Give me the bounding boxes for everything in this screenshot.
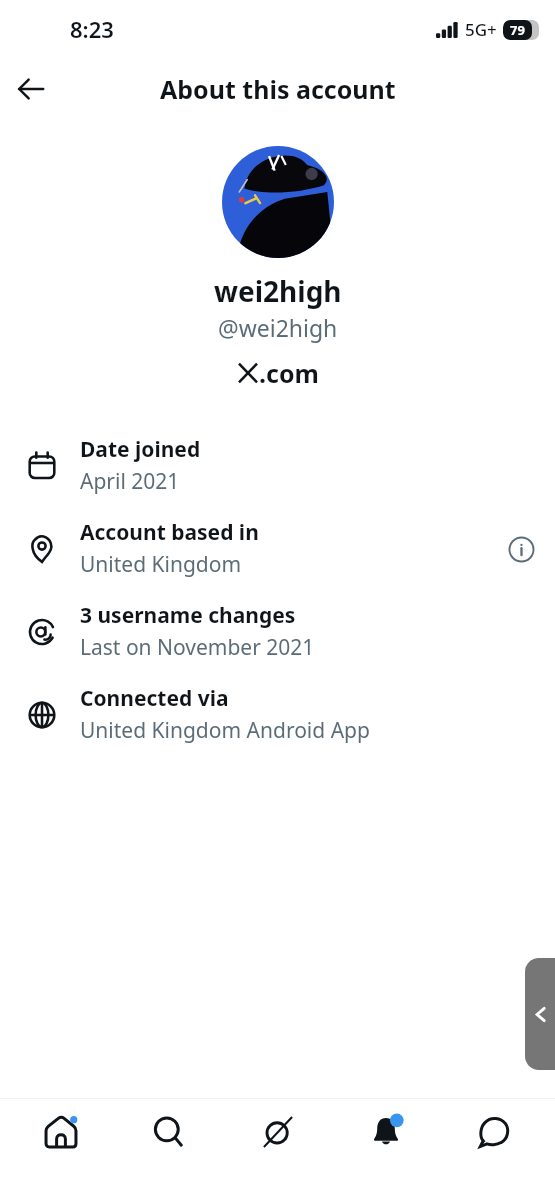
button[interactable]: Search — [122, 1099, 216, 1165]
button[interactable]: Account based in — [0, 507, 555, 590]
staticText: United Kingdom Android App — [80, 716, 370, 745]
staticText: @wei2high — [218, 312, 338, 343]
staticText: .com — [259, 356, 319, 390]
staticText: Connected via — [80, 684, 229, 713]
staticText: 5G+ — [465, 18, 497, 41]
staticText: 79 — [510, 21, 525, 39]
staticText: 8:23 — [70, 14, 114, 44]
staticText: wei2high — [214, 272, 342, 310]
staticText: About this account — [160, 72, 396, 106]
button[interactable]: Connected via — [0, 673, 555, 756]
button[interactable]: Home — [14, 1099, 108, 1165]
staticText: April 2021 — [80, 467, 180, 496]
button[interactable]: More information — [503, 531, 539, 567]
staticText: Account based in — [80, 518, 259, 547]
button[interactable]: Back — [7, 65, 55, 113]
button[interactable]: Messages — [447, 1099, 541, 1165]
button[interactable]: Grok — [231, 1099, 325, 1165]
button[interactable]: Back gesture — [525, 958, 555, 1070]
staticText: Last on November 2021 — [80, 633, 315, 662]
staticText: Date joined — [80, 435, 201, 464]
staticText: 3 username changes — [80, 601, 296, 630]
button[interactable]: Date joined — [0, 424, 555, 507]
button[interactable]: 3 username changes — [0, 590, 555, 673]
staticText: United Kingdom — [80, 550, 242, 579]
button[interactable]: Notifications, 2 new — [339, 1099, 433, 1165]
